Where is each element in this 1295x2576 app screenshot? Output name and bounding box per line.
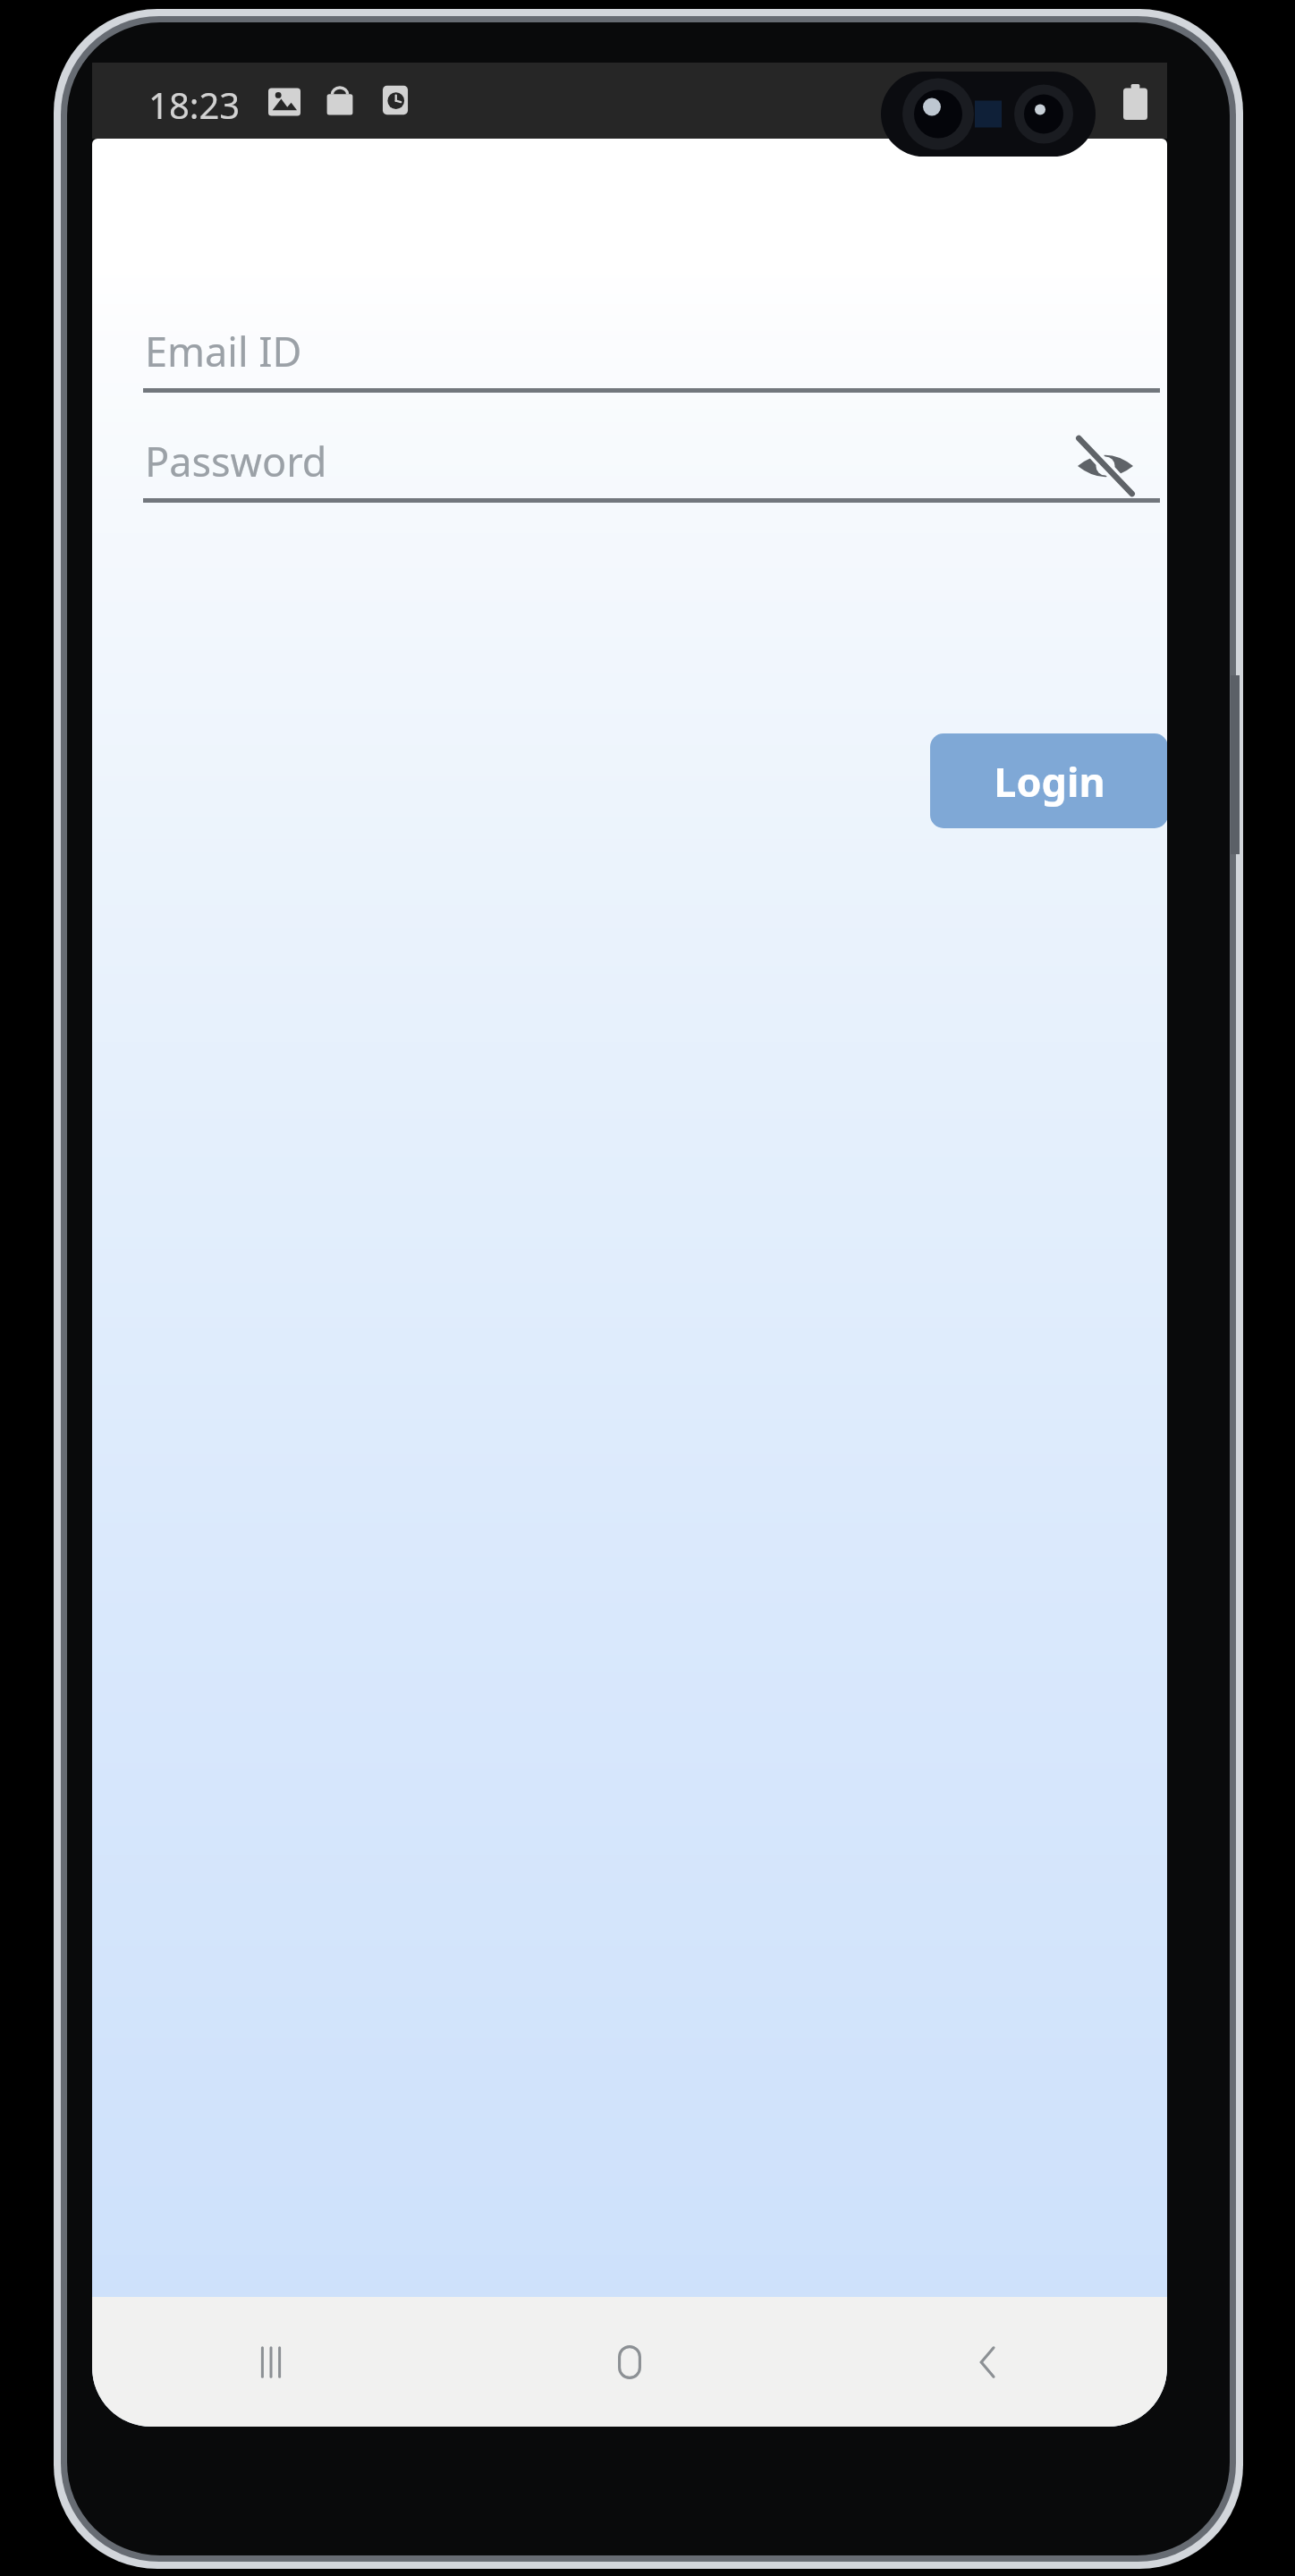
staticText: Password xyxy=(145,434,327,488)
button[interactable]: Back xyxy=(808,2297,1167,2427)
button[interactable]: Show password xyxy=(1062,423,1148,509)
staticText: 18:23 xyxy=(148,80,241,129)
button[interactable]: Login xyxy=(930,733,1167,828)
button[interactable]: Home xyxy=(450,2297,808,2427)
button[interactable]: Email ID xyxy=(132,313,1156,411)
button[interactable]: Password xyxy=(132,423,1156,521)
staticText: Email ID xyxy=(145,324,302,378)
button[interactable]: Recent apps xyxy=(92,2297,450,2427)
staticText: Login xyxy=(994,754,1105,809)
